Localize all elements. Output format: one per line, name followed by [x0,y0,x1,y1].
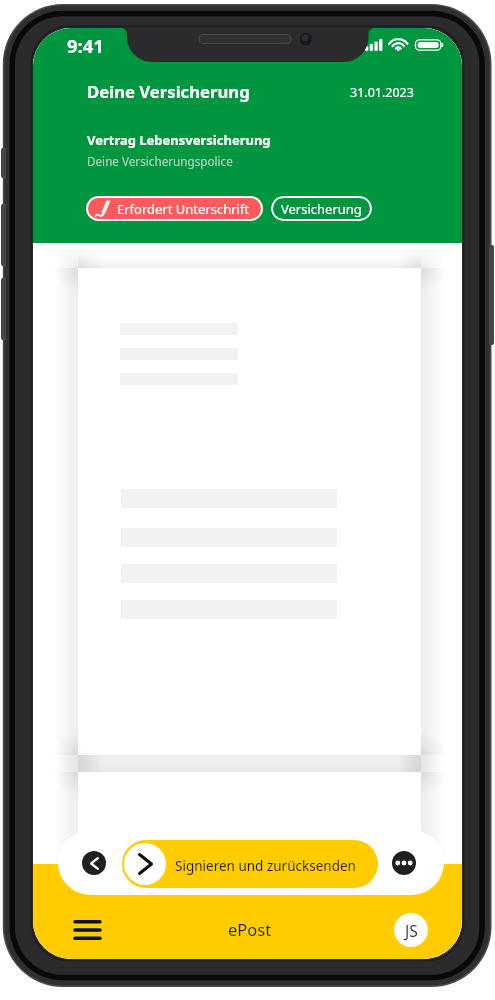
staticText: ePost [228,918,272,940]
staticText: 31.01.2023 [350,84,414,101]
staticText: Erfordert Unterschrift [117,200,250,218]
staticText: 9:41 [67,33,104,58]
staticText: Signieren und zurücksenden [175,857,356,875]
button[interactable]: Menu [75,920,100,940]
button[interactable]: More options [392,851,416,875]
staticText: Vertrag Lebensversicherung [87,131,271,149]
button[interactable]: JS [394,913,428,947]
button[interactable]: Versicherung [271,196,372,221]
staticText: JS [405,920,418,941]
staticText: Deine Versicherung [87,80,250,103]
staticText: Versicherung [281,200,362,218]
button[interactable]: Erfordert Unterschrift [88,198,261,219]
button[interactable]: Previous page [82,851,106,875]
button[interactable]: Signieren und zurücksenden [122,840,378,888]
staticText: Deine Versicherungspolice [87,153,233,169]
